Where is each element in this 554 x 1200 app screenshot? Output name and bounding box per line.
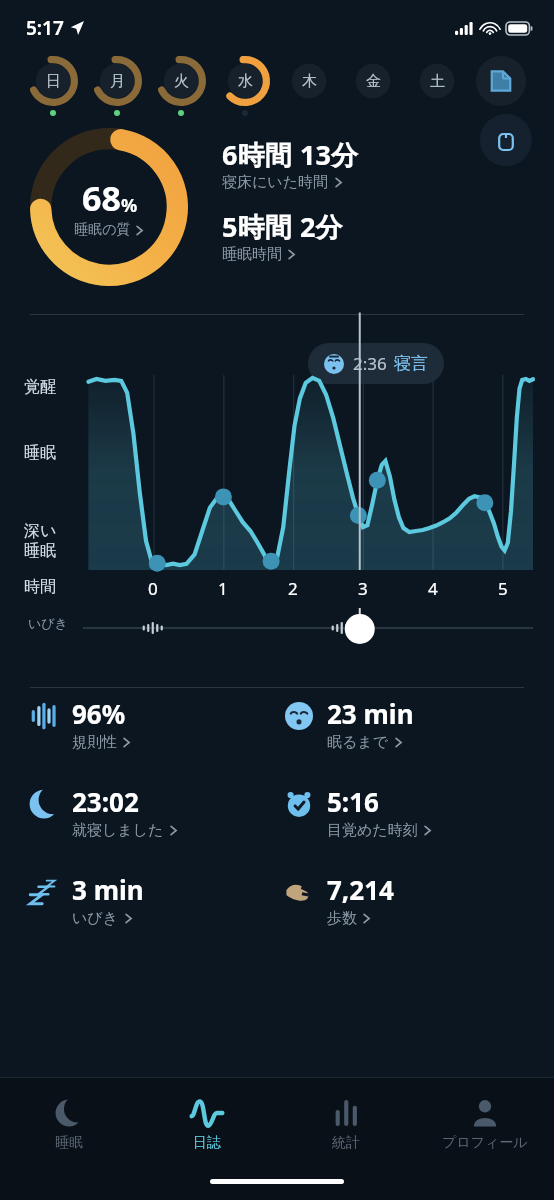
button[interactable]: 統計 [276,1078,415,1170]
staticText: 5:17 [26,15,64,41]
staticText: 統計 [332,1134,360,1152]
staticText: いびき [28,615,68,631]
button[interactable]: Note [480,114,532,166]
staticText: 23 min [327,696,414,731]
button[interactable]: 木 [278,56,340,132]
staticText: 寝床にいた時間 [222,173,329,192]
button[interactable]: 23 min [281,696,536,752]
button[interactable]: 金 [342,56,404,132]
staticText: 3 min [72,872,144,907]
staticText: 就寝しました [72,821,164,840]
staticText: 日 [46,72,61,91]
staticText: 睡眠 [24,443,56,463]
staticText: % [121,193,138,218]
button[interactable]: 96% [26,696,281,752]
staticText: 0 [148,577,158,600]
staticText: 時間 [24,577,56,597]
staticText: 木 [302,72,317,91]
staticText: 23:02 [72,784,139,819]
button[interactable]: 5:16 [281,784,536,840]
staticText: 3 [358,577,368,600]
staticText: 火 [174,72,189,91]
button[interactable]: 水 [214,56,276,132]
button[interactable]: 火 [150,56,212,132]
button[interactable]: Notes [470,56,532,132]
staticText: 6時間 [222,136,292,173]
staticText: 7,214 [327,872,394,907]
staticText: 歩数 [327,909,357,928]
staticText: 5:16 [327,784,379,819]
button[interactable]: 月 [86,56,148,132]
button[interactable]: 3 min [26,872,281,928]
staticText: 覚醒 [24,377,56,397]
button[interactable]: 睡眠 [0,1078,138,1170]
staticText: 眠るまで [327,733,389,752]
button[interactable]: 5時間 [222,208,343,264]
staticText: 睡眠 [55,1134,83,1152]
staticText: いびき [72,909,119,928]
button[interactable]: 68 [24,122,194,292]
staticText: 規則性 [72,733,117,752]
staticText: プロフィール [442,1134,528,1152]
staticText: 日誌 [193,1134,221,1152]
button[interactable]: 日誌 [138,1078,276,1170]
staticText: 月 [110,72,125,91]
staticText: 寝言 [394,353,428,374]
staticText: 深い 睡眠 [24,521,57,561]
staticText: 金 [366,72,381,91]
staticText: 13分 [300,136,358,173]
staticText: 5時間 [222,208,292,245]
staticText: 睡眠の質 [74,221,131,239]
button[interactable]: プロフィール [415,1078,554,1170]
button[interactable]: 23:02 [26,784,281,840]
staticText: 5 [498,577,508,600]
button[interactable]: 土 [406,56,468,132]
staticText: 2分 [300,208,343,245]
button[interactable]: 6時間 [222,136,358,192]
staticText: 土 [430,72,445,91]
staticText: 68 [82,175,121,221]
staticText: 睡眠時間 [222,245,282,264]
staticText: 4 [428,577,438,600]
button[interactable]: 7,214 [281,872,536,928]
staticText: 2:36 [353,352,387,375]
staticText: 2 [288,577,298,600]
staticText: 水 [238,72,253,91]
button[interactable]: 日 [22,56,84,132]
staticText: 96% [72,696,126,731]
staticText: 1 [218,577,228,600]
button[interactable]: 2:36 [308,343,444,384]
staticText: 目覚めた時刻 [327,821,418,840]
